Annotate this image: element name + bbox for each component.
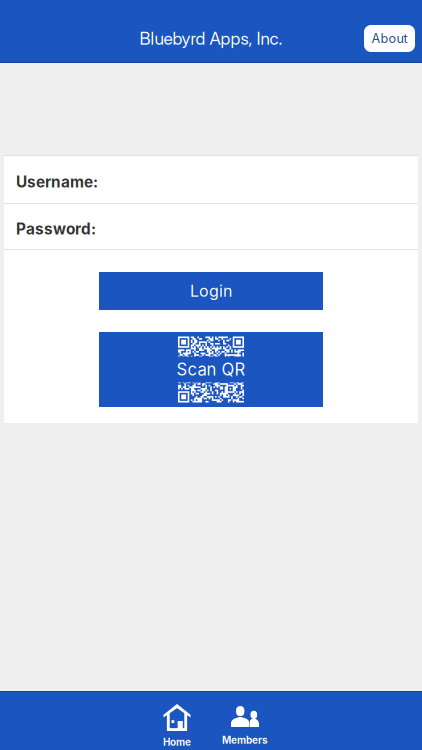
button[interactable]: Home — [143, 691, 211, 750]
button[interactable]: Members — [211, 691, 279, 750]
staticText: Members — [222, 734, 268, 746]
button[interactable]: Scan QR — [99, 332, 323, 407]
staticText: Username: — [16, 173, 98, 191]
staticText: Scan QR — [176, 359, 245, 380]
button[interactable]: Login — [99, 272, 323, 310]
staticText: Home — [163, 736, 191, 748]
staticText: About — [371, 31, 407, 46]
staticText: Login — [190, 281, 232, 301]
button[interactable]: About — [364, 25, 415, 52]
staticText: Bluebyrd Apps, Inc. — [139, 28, 282, 49]
staticText: Password: — [16, 220, 96, 238]
